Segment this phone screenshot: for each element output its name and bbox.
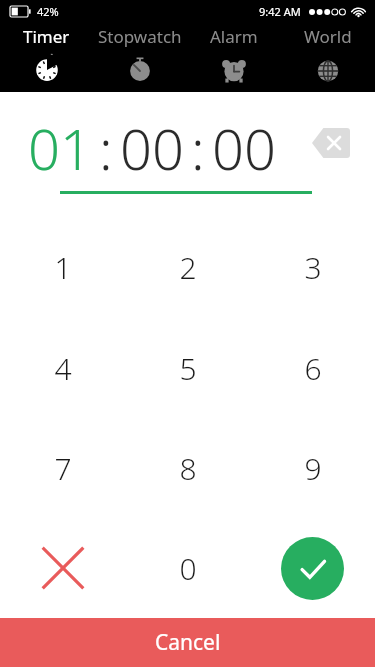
staticText: 00 bbox=[120, 110, 184, 186]
button[interactable]: 5 bbox=[125, 318, 250, 418]
staticText: 9:42 AM bbox=[259, 4, 301, 19]
staticText: 01 bbox=[28, 110, 92, 186]
button[interactable]: 4 bbox=[0, 318, 125, 418]
staticText: : bbox=[99, 110, 113, 186]
button[interactable]: 8 bbox=[125, 418, 250, 518]
button[interactable]: 0 bbox=[125, 518, 250, 618]
button[interactable]: Alarm bbox=[187, 22, 281, 92]
staticText: 6 bbox=[304, 348, 322, 389]
button[interactable]: Backspace bbox=[312, 128, 350, 158]
staticText: 3 bbox=[304, 247, 322, 288]
staticText: 9 bbox=[304, 448, 322, 489]
staticText: 5 bbox=[179, 348, 197, 389]
staticText: Stopwatch bbox=[98, 25, 182, 48]
button[interactable]: Stopwatch bbox=[93, 22, 187, 92]
staticText: 7 bbox=[54, 448, 72, 489]
button[interactable]: Cancel bbox=[0, 618, 375, 667]
button[interactable]: 7 bbox=[0, 418, 125, 518]
staticText: 2 bbox=[179, 247, 197, 288]
button[interactable]: 6 bbox=[250, 318, 375, 418]
staticText: : bbox=[191, 110, 205, 186]
button[interactable]: World bbox=[281, 22, 375, 92]
button[interactable]: Start timer bbox=[250, 518, 375, 618]
button[interactable]: Timer bbox=[0, 22, 93, 92]
staticText: 42% bbox=[37, 4, 59, 19]
staticText: World bbox=[304, 25, 352, 48]
button[interactable]: 1 bbox=[0, 217, 125, 318]
staticText: 0 bbox=[179, 548, 197, 589]
button[interactable]: 3 bbox=[250, 217, 375, 318]
staticText: Cancel bbox=[155, 628, 221, 657]
button[interactable]: 9 bbox=[250, 418, 375, 518]
button[interactable]: 2 bbox=[125, 217, 250, 318]
staticText: 8 bbox=[179, 448, 197, 489]
staticText: Alarm bbox=[210, 25, 258, 48]
staticText: Timer bbox=[23, 25, 70, 48]
staticText: 4 bbox=[54, 348, 72, 389]
button[interactable]: Clear bbox=[0, 518, 125, 618]
staticText: 00 bbox=[212, 110, 276, 186]
staticText: 1 bbox=[54, 247, 72, 288]
